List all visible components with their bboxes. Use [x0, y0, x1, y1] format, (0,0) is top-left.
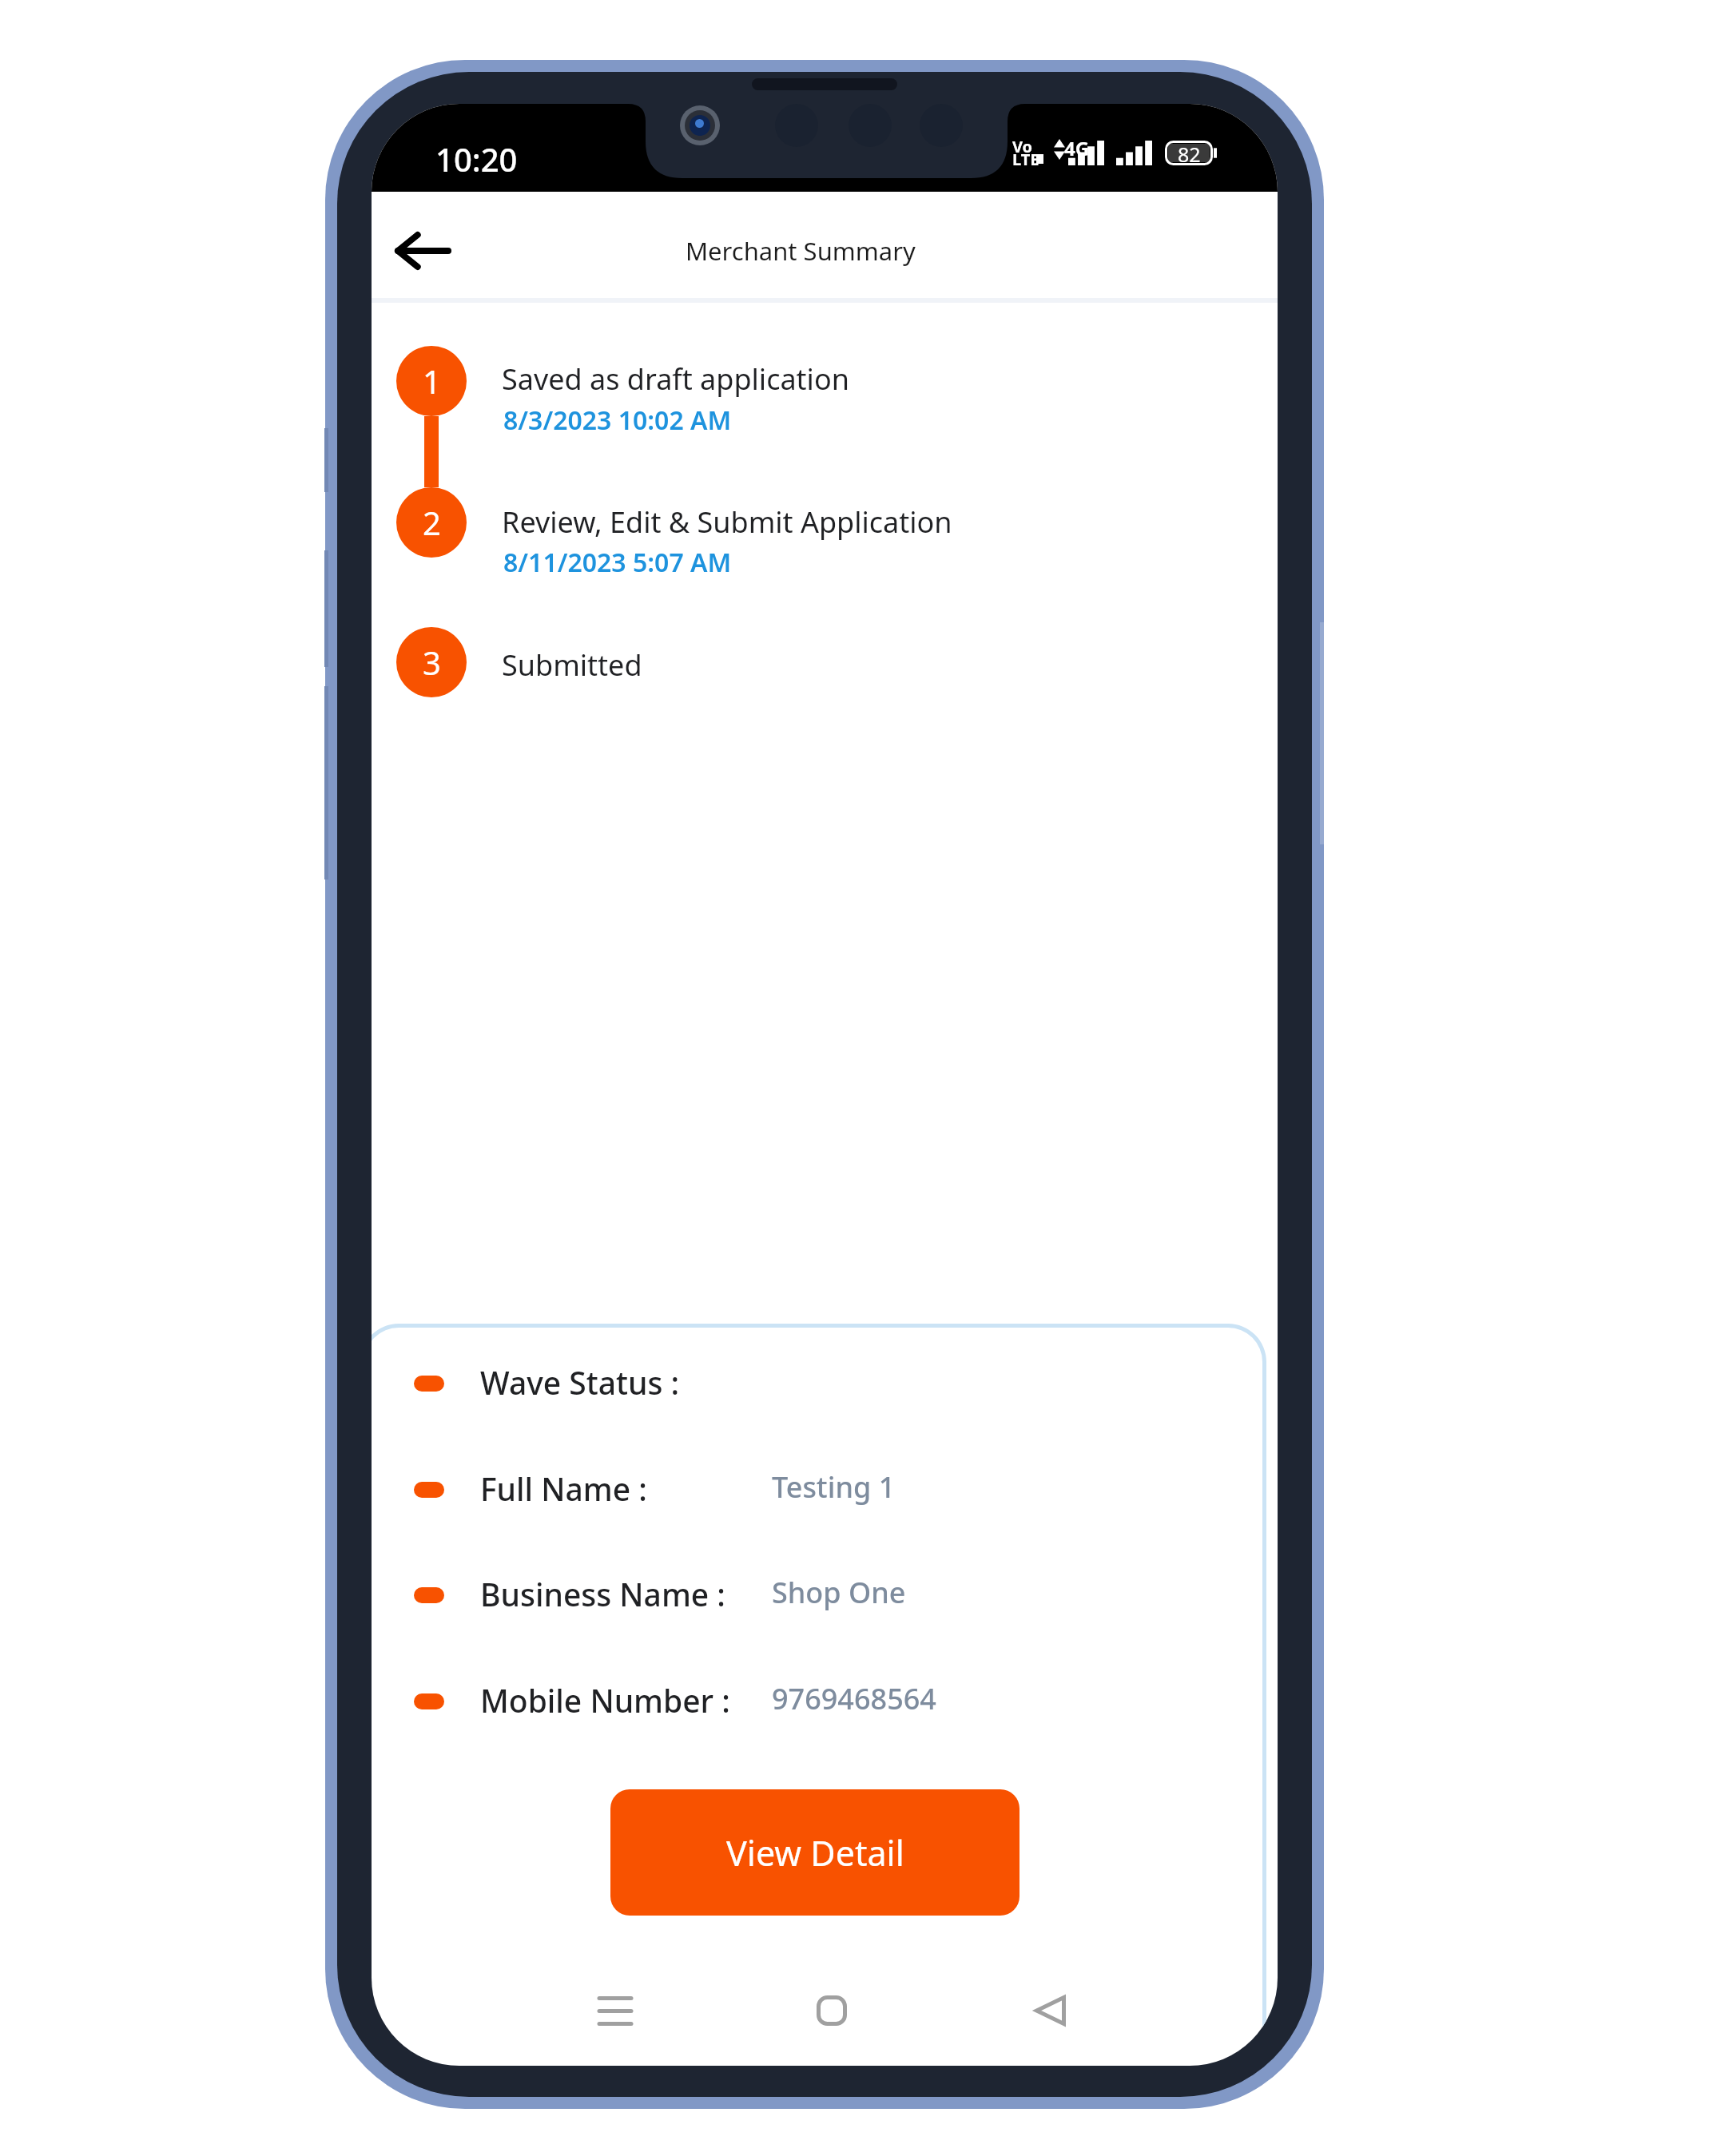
- staticText: Wave Status :: [480, 1361, 680, 1404]
- staticText: View Detail: [726, 1829, 904, 1876]
- staticText: 4G: [1064, 135, 1090, 161]
- staticText: LTE: [1012, 149, 1039, 170]
- staticText: 3: [423, 641, 441, 684]
- staticText: Saved as draft application: [502, 359, 849, 399]
- staticText: Testing 1: [772, 1467, 896, 1507]
- staticText: 9769468564: [772, 1679, 936, 1718]
- button[interactable]: Home: [792, 1971, 872, 2051]
- staticText: Full Name :: [480, 1467, 647, 1510]
- staticText: 10:20: [435, 137, 518, 181]
- staticText: Mobile Number :: [480, 1679, 730, 1721]
- button[interactable]: Back: [1010, 1971, 1090, 2051]
- staticText: 2: [423, 501, 441, 544]
- staticText: Business Name :: [480, 1573, 725, 1615]
- staticText: Submitted: [502, 645, 642, 685]
- button[interactable]: View Detail: [610, 1789, 1019, 1916]
- staticText: 82: [1178, 141, 1201, 165]
- staticText: Shop One: [772, 1573, 906, 1612]
- staticText: Vo: [1012, 136, 1033, 157]
- button[interactable]: Back: [395, 232, 454, 270]
- staticText: 8/3/2023 10:02 AM: [503, 403, 732, 438]
- button[interactable]: Recents: [575, 1971, 655, 2051]
- staticText: Review, Edit & Submit Application: [502, 502, 952, 542]
- staticText: 8/11/2023 5:07 AM: [503, 545, 732, 580]
- staticText: Merchant Summary: [686, 234, 916, 268]
- staticText: 1: [423, 359, 441, 403]
